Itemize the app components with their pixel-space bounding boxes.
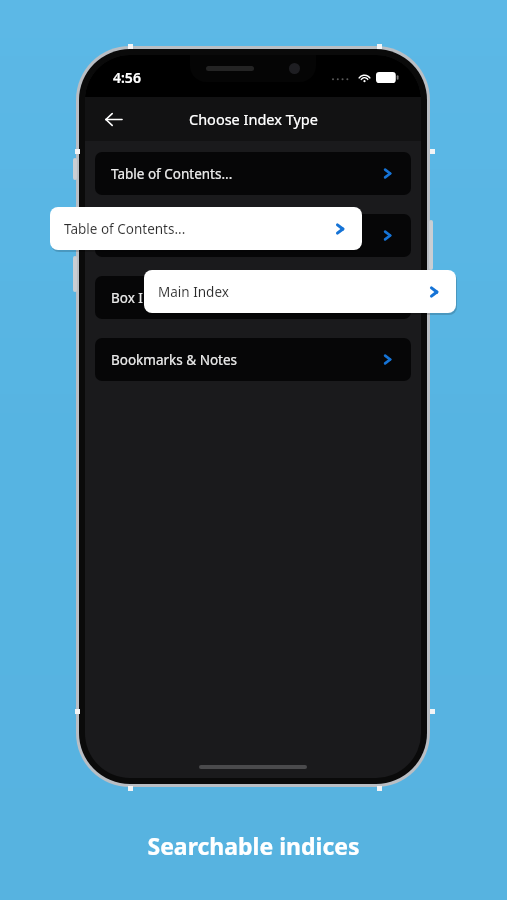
button[interactable]: Main Index <box>144 270 456 313</box>
staticText: Table of Contents... <box>64 220 186 238</box>
button[interactable]: Bookmarks & Notes <box>95 338 411 381</box>
staticText: Bookmarks & Notes <box>111 351 238 369</box>
button[interactable]: Table of Contents... <box>95 152 411 195</box>
button[interactable]: Main Index <box>95 214 411 257</box>
staticText: Searchable indices <box>0 830 507 861</box>
button[interactable]: Back <box>93 99 133 139</box>
button[interactable]: Box Index <box>95 276 411 319</box>
staticText: 4:56 <box>113 68 141 87</box>
staticText: Table of Contents... <box>111 165 233 183</box>
button[interactable]: Table of Contents... <box>50 207 362 250</box>
staticText: Choose Index Type <box>189 109 318 129</box>
staticText: Main Index <box>158 283 229 301</box>
staticText: Box Index <box>111 289 175 307</box>
staticText: Main Index <box>111 227 182 245</box>
